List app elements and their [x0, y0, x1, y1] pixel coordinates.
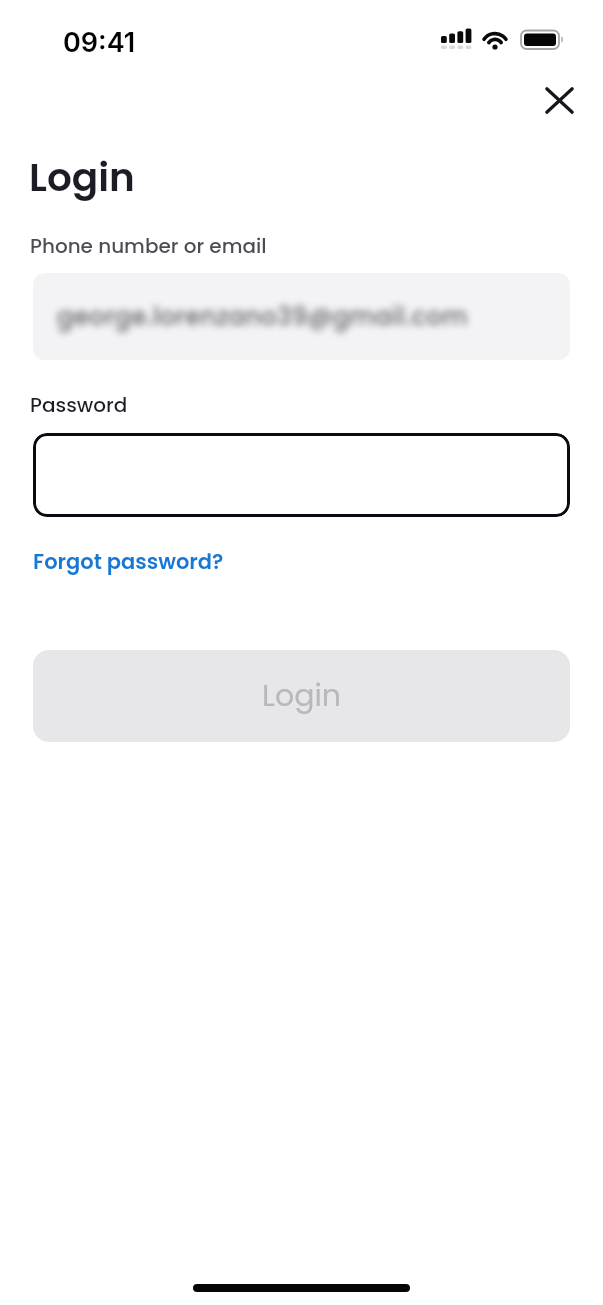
- button[interactable]: george.lorenzano39@gmail.com: [33, 273, 570, 360]
- staticText: george.lorenzano39@gmail.com: [57, 300, 468, 334]
- staticText: 09:41: [63, 26, 136, 59]
- staticText: Password: [30, 391, 128, 419]
- staticText: Forgot password?: [33, 547, 224, 576]
- button[interactable]: Forgot password?: [33, 547, 224, 576]
- button[interactable]: Login: [33, 650, 570, 742]
- button[interactable]: [536, 78, 582, 122]
- staticText: Login: [29, 150, 135, 205]
- staticText: Phone number or email: [30, 232, 267, 260]
- staticText: Login: [262, 675, 342, 717]
- button[interactable]: [33, 433, 570, 517]
